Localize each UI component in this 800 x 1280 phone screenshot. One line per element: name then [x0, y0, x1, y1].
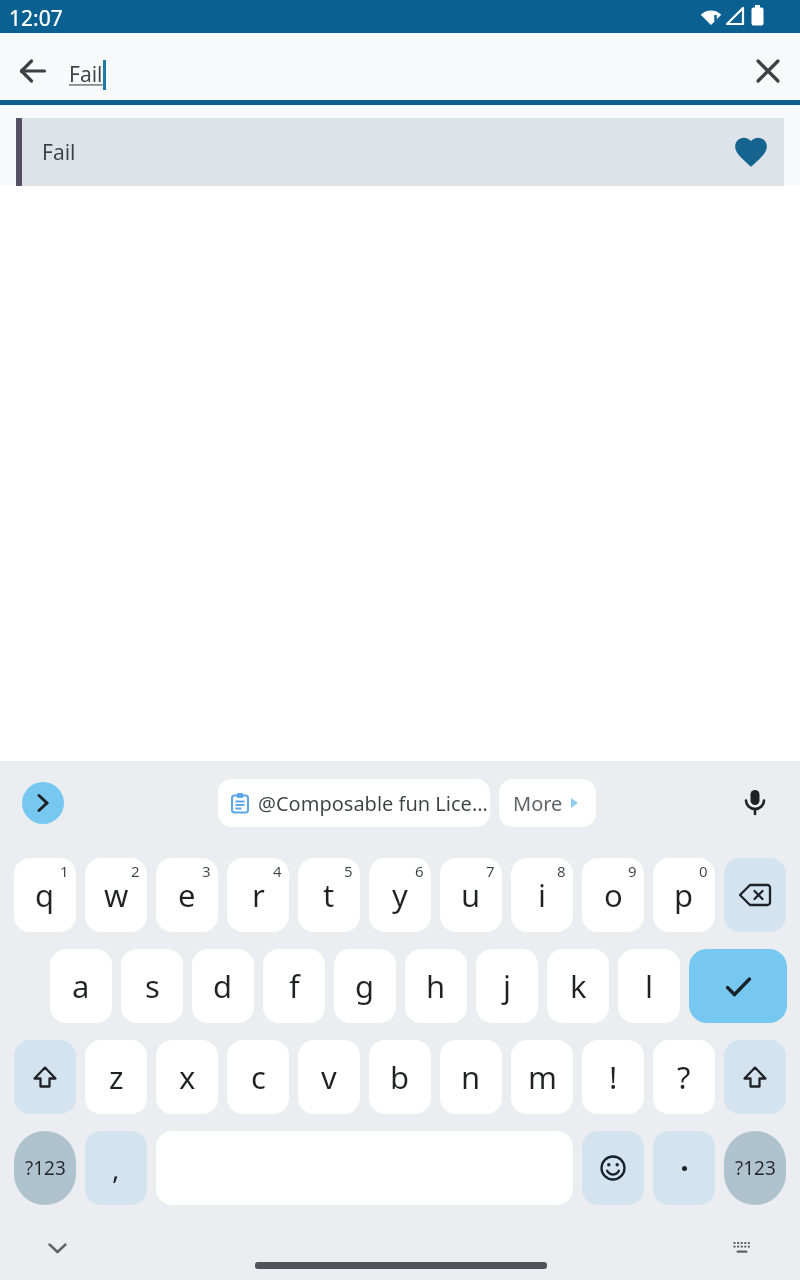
button[interactable]: j: [476, 949, 538, 1023]
button[interactable]: [724, 1040, 786, 1114]
button[interactable]: [22, 782, 64, 824]
button[interactable]: i: [511, 858, 573, 932]
staticText: 12:07: [9, 4, 63, 33]
staticText: f: [289, 965, 300, 1007]
button[interactable]: [582, 1131, 644, 1205]
staticText: ?123: [25, 1155, 66, 1181]
button[interactable]: m: [511, 1040, 573, 1114]
staticText: 1: [60, 861, 69, 881]
staticText: l: [645, 965, 653, 1007]
button[interactable]: x: [156, 1040, 218, 1114]
staticText: q: [35, 874, 55, 916]
button[interactable]: k: [547, 949, 609, 1023]
staticText: 2: [131, 861, 140, 881]
staticText: x: [179, 1056, 196, 1098]
button[interactable]: d: [192, 949, 254, 1023]
button[interactable]: !: [582, 1040, 644, 1114]
button[interactable]: w: [85, 858, 147, 932]
staticText: j: [503, 965, 511, 1007]
staticText: @Composable fun Lice…: [258, 790, 488, 817]
staticText: y: [392, 874, 408, 916]
staticText: b: [390, 1056, 410, 1098]
button[interactable]: [689, 949, 787, 1023]
staticText: i: [538, 874, 546, 916]
staticText: 6: [415, 861, 424, 881]
button[interactable]: y: [369, 858, 431, 932]
button[interactable]: ?123: [724, 1131, 786, 1205]
staticText: z: [109, 1056, 124, 1098]
staticText: n: [461, 1056, 481, 1098]
staticText: w: [104, 874, 129, 916]
staticText: 4: [273, 861, 282, 881]
staticText: u: [461, 874, 481, 916]
staticText: !: [609, 1056, 618, 1098]
button[interactable]: Fail: [16, 118, 784, 186]
button[interactable]: r: [227, 858, 289, 932]
button[interactable]: c: [227, 1040, 289, 1114]
button[interactable]: p: [653, 858, 715, 932]
staticText: 8: [557, 861, 566, 881]
button[interactable]: n: [440, 1040, 502, 1114]
button[interactable]: [735, 782, 775, 822]
staticText: 9: [628, 861, 637, 881]
button[interactable]: t: [298, 858, 360, 932]
button[interactable]: ?123: [14, 1131, 76, 1205]
staticText: g: [355, 965, 375, 1007]
button[interactable]: u: [440, 858, 502, 932]
button[interactable]: v: [298, 1040, 360, 1114]
button[interactable]: [727, 1236, 757, 1260]
staticText: t: [323, 874, 335, 916]
button[interactable]: s: [121, 949, 183, 1023]
staticText: 3: [202, 861, 211, 881]
staticText: m: [528, 1056, 557, 1098]
staticText: c: [251, 1056, 266, 1098]
button[interactable]: q: [14, 858, 76, 932]
staticText: ,: [112, 1149, 120, 1187]
staticText: k: [570, 965, 587, 1007]
button[interactable]: More: [499, 779, 596, 827]
staticText: a: [72, 965, 90, 1007]
staticText: e: [178, 874, 196, 916]
staticText: d: [213, 965, 233, 1007]
button[interactable]: ?: [653, 1040, 715, 1114]
button[interactable]: [8, 46, 58, 96]
button[interactable]: b: [369, 1040, 431, 1114]
button[interactable]: [41, 1236, 73, 1260]
button[interactable]: @Composable fun Lice…: [218, 779, 490, 827]
button[interactable]: e: [156, 858, 218, 932]
staticText: Fail: [42, 138, 76, 167]
staticText: h: [426, 965, 446, 1007]
button[interactable]: h: [405, 949, 467, 1023]
staticText: 5: [344, 861, 353, 881]
button[interactable]: a: [50, 949, 112, 1023]
staticText: v: [321, 1056, 337, 1098]
button[interactable]: [724, 858, 786, 932]
button[interactable]: [653, 1131, 715, 1205]
button[interactable]: g: [334, 949, 396, 1023]
button[interactable]: ,: [85, 1131, 147, 1205]
staticText: p: [674, 874, 694, 916]
button[interactable]: l: [618, 949, 680, 1023]
button[interactable]: f: [263, 949, 325, 1023]
button[interactable]: z: [85, 1040, 147, 1114]
staticText: 7: [486, 861, 495, 881]
button[interactable]: o: [582, 858, 644, 932]
button[interactable]: [14, 1040, 76, 1114]
staticText: ?123: [735, 1155, 776, 1181]
staticText: s: [145, 965, 160, 1007]
staticText: o: [604, 874, 623, 916]
staticText: 0: [699, 861, 708, 881]
staticText: More: [513, 790, 563, 817]
staticText: ?: [677, 1056, 691, 1098]
staticText: Fail: [69, 60, 103, 89]
staticText: r: [252, 874, 265, 916]
button[interactable]: [743, 46, 793, 96]
